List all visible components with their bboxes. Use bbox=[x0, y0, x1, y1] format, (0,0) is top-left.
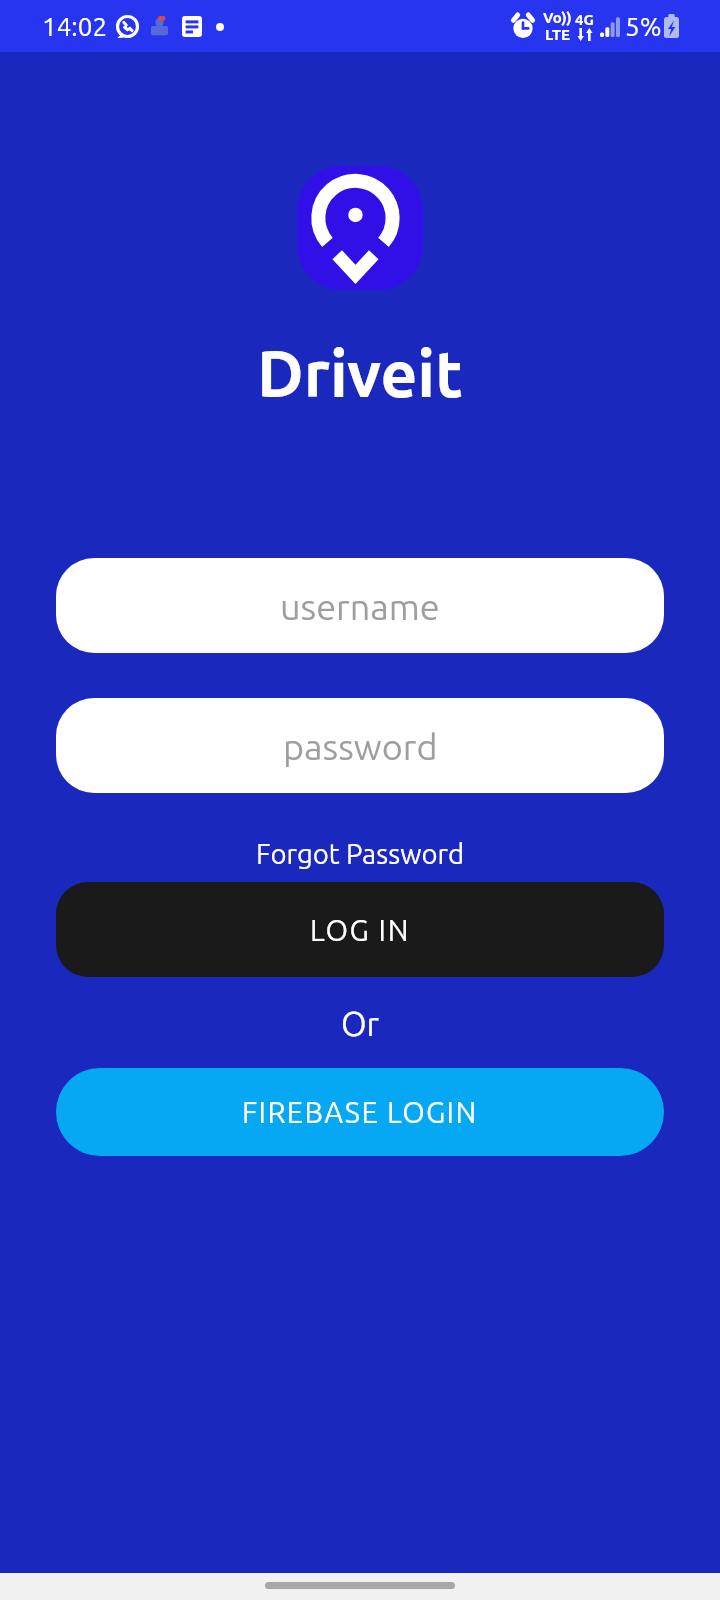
button[interactable]: username bbox=[56, 558, 664, 653]
staticText: password bbox=[283, 726, 438, 766]
other: Driveit logo bbox=[297, 166, 423, 290]
staticText: 14:02 bbox=[42, 12, 108, 41]
button[interactable]: FIREBASE LOGIN bbox=[56, 1068, 664, 1156]
button[interactable]: Forgot Password bbox=[246, 835, 475, 872]
staticText: Driveit bbox=[257, 337, 463, 409]
staticText: FIREBASE LOGIN bbox=[242, 1096, 478, 1129]
staticText: 4G bbox=[575, 11, 594, 28]
staticText: LOG IN bbox=[310, 914, 410, 947]
button[interactable]: LOG IN bbox=[56, 882, 664, 977]
staticText: username bbox=[280, 586, 440, 626]
staticText: Or bbox=[341, 1005, 380, 1042]
staticText: 5% bbox=[625, 12, 662, 41]
button[interactable]: password bbox=[56, 698, 664, 793]
staticText: LTE bbox=[545, 26, 570, 43]
staticText: Vo)) bbox=[543, 9, 572, 26]
staticText: Forgot Password bbox=[256, 838, 465, 869]
